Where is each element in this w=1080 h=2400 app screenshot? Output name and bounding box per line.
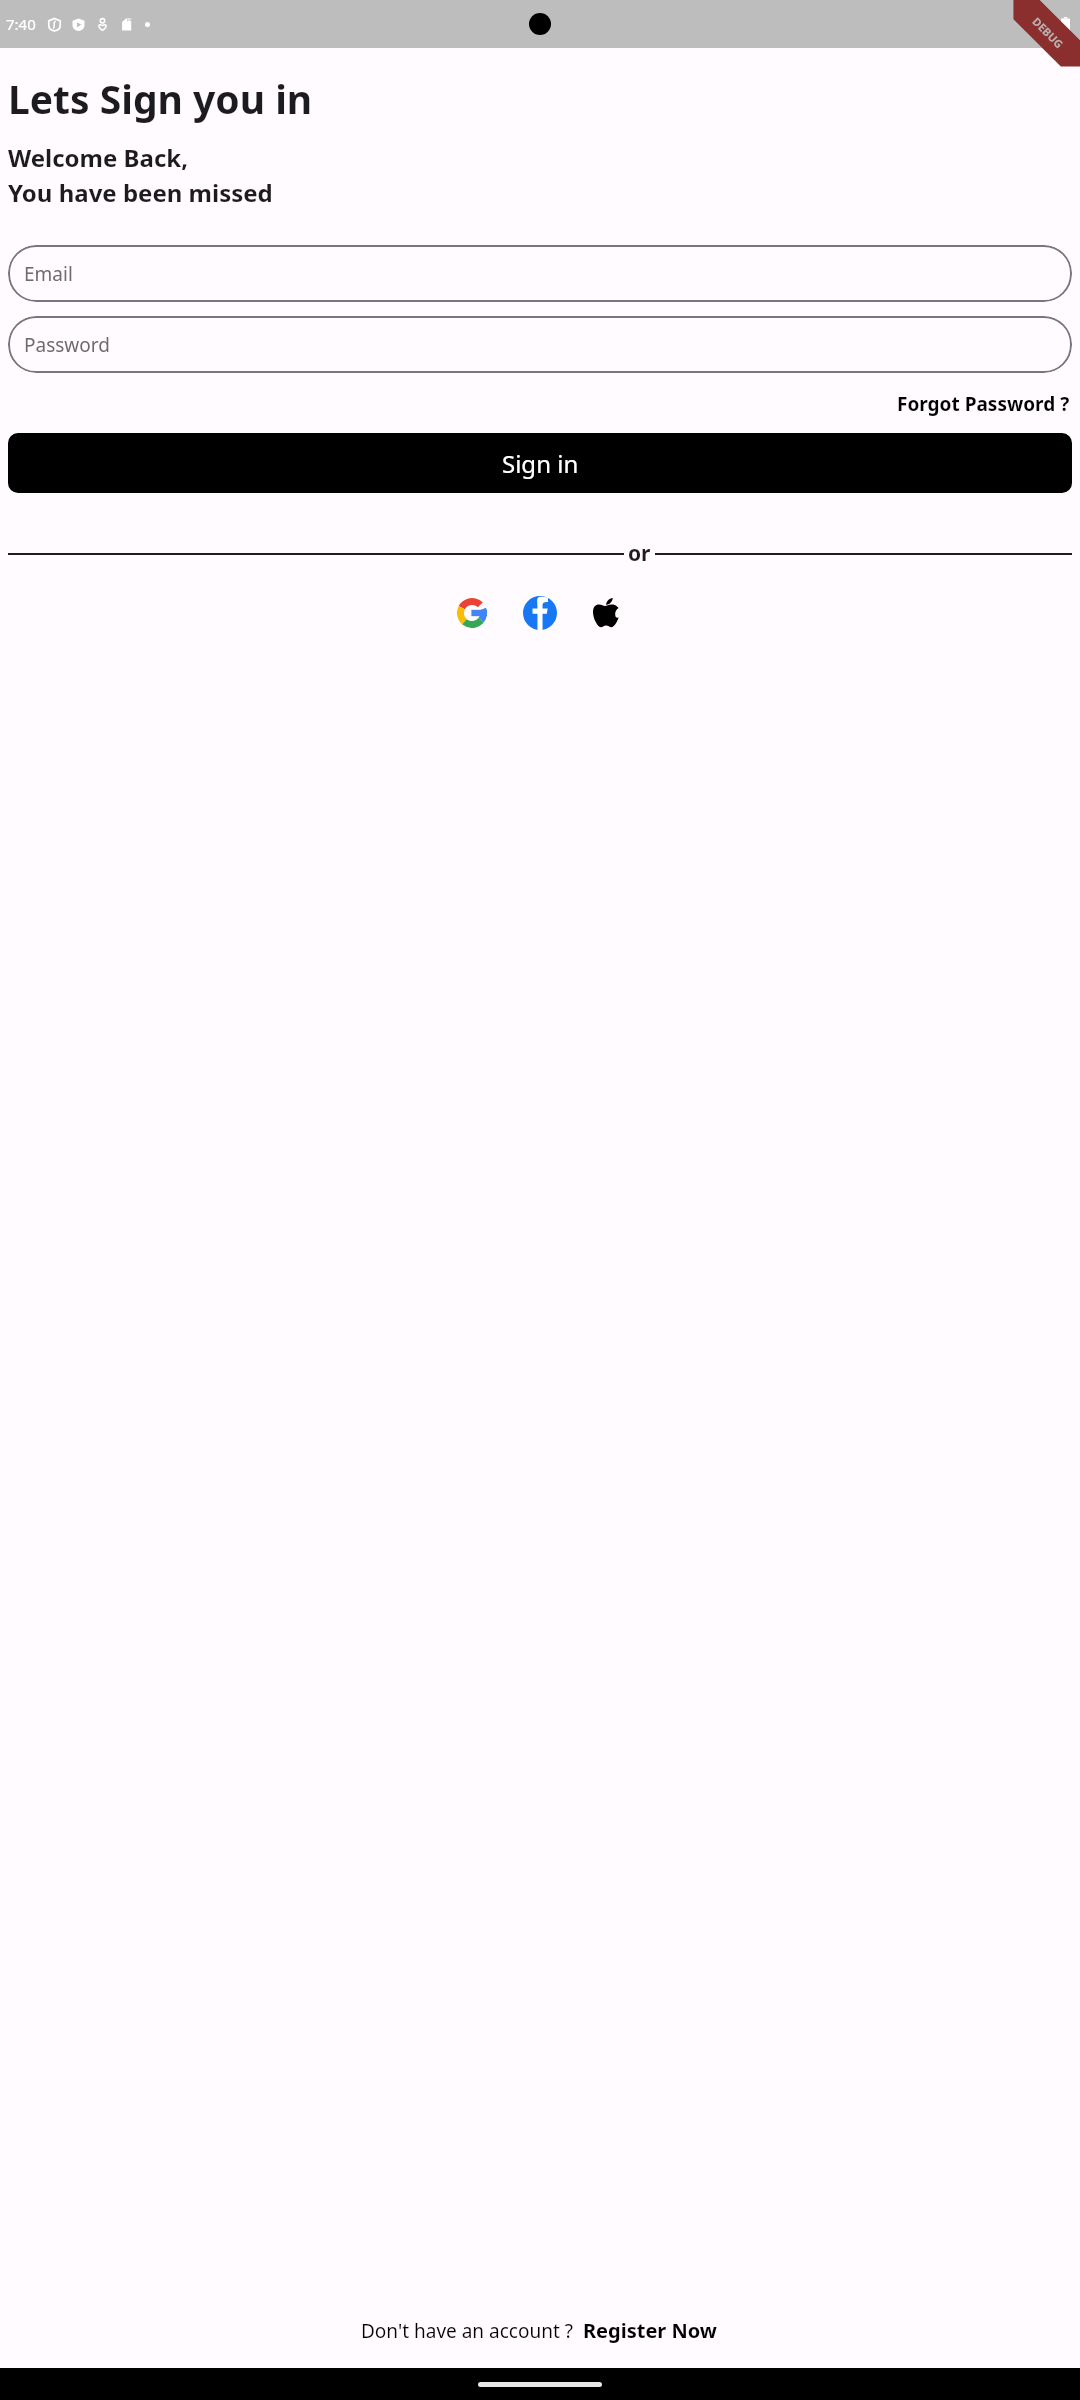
button[interactable]: Sign in with Apple [581, 586, 635, 640]
staticText: Welcome Back, [8, 141, 188, 174]
staticText: 7:40 [6, 14, 36, 34]
staticText: Email [24, 261, 73, 287]
button[interactable]: Sign in with Facebook [513, 586, 567, 640]
button[interactable]: Forgot Password ? [895, 389, 1072, 419]
staticText: Password [24, 332, 110, 358]
button[interactable]: Password [8, 316, 1072, 373]
staticText: or [628, 539, 651, 568]
staticText: DEBUG [1029, 14, 1067, 51]
button[interactable]: Email [8, 245, 1072, 302]
staticText: Forgot Password ? [897, 391, 1070, 417]
staticText: Don't have an account ? [361, 2318, 573, 2344]
button[interactable]: Register Now [581, 2315, 719, 2346]
button[interactable]: Sign in with Google [445, 586, 499, 640]
staticText: Sign in [502, 447, 579, 480]
staticText: You have been missed [8, 176, 273, 209]
button[interactable]: Sign in [8, 433, 1072, 493]
staticText: Register Now [583, 2317, 717, 2344]
staticText: Lets Sign you in [8, 72, 313, 125]
